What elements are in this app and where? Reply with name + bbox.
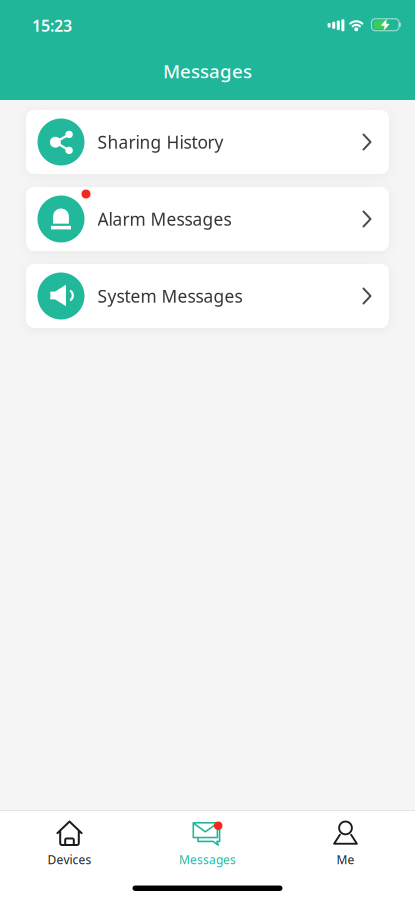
button[interactable]: Me [276, 813, 414, 875]
staticText: Sharing History [97, 130, 223, 153]
staticText: Messages [163, 59, 252, 83]
staticText: Alarm Messages [97, 207, 231, 230]
button[interactable]: System Messages [26, 264, 389, 328]
staticText: 15:23 [32, 15, 72, 36]
staticText: System Messages [97, 284, 242, 307]
staticText: Messages [179, 851, 236, 867]
button[interactable]: Messages [138, 813, 276, 875]
staticText: Me [336, 851, 354, 867]
button[interactable]: Alarm Messages [26, 187, 389, 251]
staticText: Devices [47, 851, 91, 867]
button[interactable]: Sharing History [26, 110, 389, 174]
button[interactable]: Devices [0, 813, 138, 875]
